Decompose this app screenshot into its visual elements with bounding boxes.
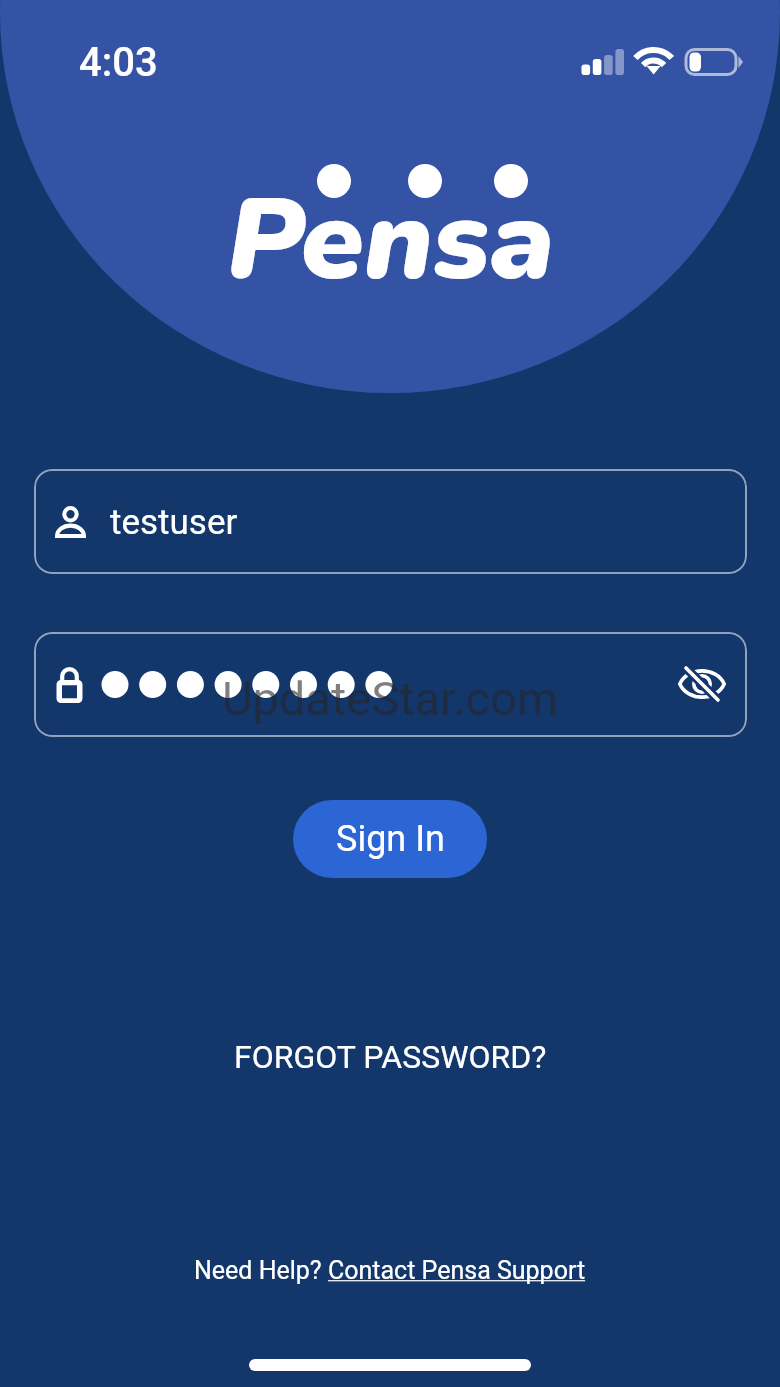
staticText: Pensa xyxy=(227,163,555,318)
button[interactable]: FORGOT PASSWORD? xyxy=(0,1028,780,1086)
button[interactable]: Contact Pensa Support xyxy=(328,1256,586,1285)
staticText: FORGOT PASSWORD? xyxy=(234,1038,547,1076)
staticText: Need Help? xyxy=(194,1256,328,1285)
staticText: Sign In xyxy=(336,818,445,860)
button[interactable]: Show password xyxy=(671,653,733,715)
staticText: UpdateStar.com xyxy=(222,671,559,726)
button[interactable]: Show password xyxy=(34,632,747,737)
staticText: 4:03 xyxy=(79,39,158,86)
button[interactable]: testuser xyxy=(34,469,747,574)
staticText: testuser xyxy=(110,502,238,543)
button[interactable]: Sign In xyxy=(293,800,487,878)
